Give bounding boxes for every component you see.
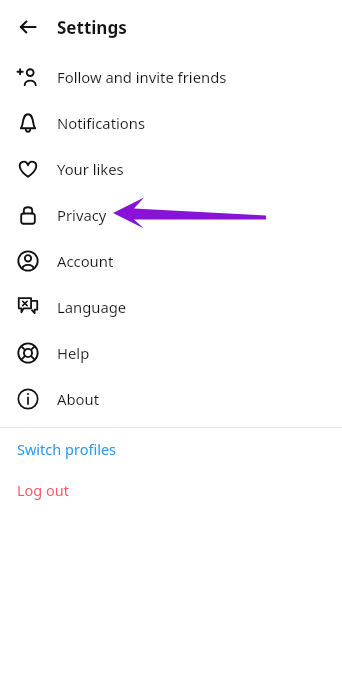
- button[interactable]: About: [0, 376, 342, 422]
- button[interactable]: Your likes: [0, 146, 342, 192]
- button[interactable]: Notifications: [0, 100, 342, 146]
- button[interactable]: Log out: [0, 469, 342, 510]
- staticText: Log out: [17, 480, 70, 500]
- button[interactable]: Help: [0, 330, 342, 376]
- button[interactable]: Privacy: [0, 192, 342, 238]
- button[interactable]: Account: [0, 238, 342, 284]
- staticText: Privacy: [57, 205, 107, 225]
- staticText: Notifications: [57, 113, 146, 133]
- button[interactable]: Back: [8, 7, 48, 47]
- staticText: Help: [57, 343, 90, 363]
- staticText: Your likes: [57, 159, 124, 179]
- staticText: Settings: [57, 16, 127, 39]
- button[interactable]: Follow and invite friends: [0, 54, 342, 100]
- staticText: Follow and invite friends: [57, 67, 227, 87]
- staticText: About: [57, 389, 99, 409]
- staticText: Switch profiles: [17, 439, 117, 459]
- button[interactable]: Switch profiles: [0, 428, 342, 469]
- staticText: Language: [57, 297, 127, 317]
- staticText: Account: [57, 251, 114, 271]
- button[interactable]: Language: [0, 284, 342, 330]
